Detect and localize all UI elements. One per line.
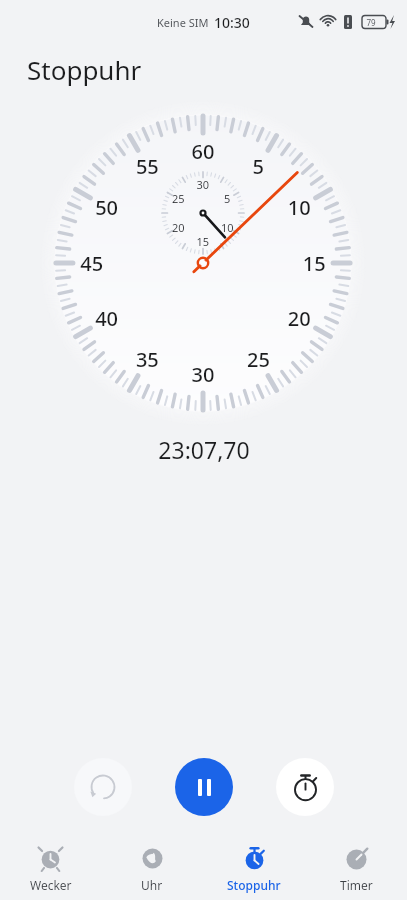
button[interactable]: Pause [175, 758, 233, 816]
button[interactable]: Stoppuhr [203, 840, 305, 893]
button[interactable]: Timer [305, 840, 407, 893]
staticText: 10:30 [214, 13, 250, 32]
staticText: Stoppuhr [27, 52, 142, 87]
button[interactable]: Uhr [101, 840, 203, 893]
button[interactable]: Runde [74, 758, 132, 816]
staticText: Wecker [30, 877, 72, 893]
staticText: Keine SIM [157, 15, 209, 30]
staticText: Stoppuhr [227, 877, 281, 893]
button[interactable]: Wecker [0, 840, 101, 893]
staticText: 23:07,70 [158, 434, 250, 465]
button[interactable]: Zwischenzeit [276, 758, 334, 816]
staticText: Timer [340, 877, 373, 893]
staticText: Uhr [141, 877, 163, 893]
